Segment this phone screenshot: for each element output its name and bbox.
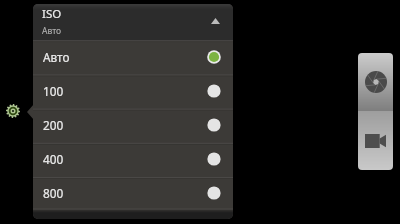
staticText: 800: [43, 185, 64, 201]
button[interactable]: Авто: [33, 41, 233, 75]
staticText: Авто: [43, 49, 70, 65]
staticText: 400: [43, 151, 64, 167]
button[interactable]: 800: [33, 177, 233, 211]
button[interactable]: Photo mode: [358, 53, 393, 111]
button[interactable]: 400: [33, 143, 233, 177]
button[interactable]: ISO: [33, 4, 233, 41]
staticText: ISO: [42, 6, 62, 22]
staticText: 200: [43, 117, 64, 133]
button[interactable]: 100: [33, 75, 233, 109]
other: Collapse: [211, 18, 220, 24]
button[interactable]: Settings: [6, 104, 20, 118]
button[interactable]: Video mode: [358, 111, 393, 170]
staticText: 100: [43, 83, 64, 99]
staticText: Авто: [42, 25, 62, 37]
button[interactable]: 200: [33, 109, 233, 143]
